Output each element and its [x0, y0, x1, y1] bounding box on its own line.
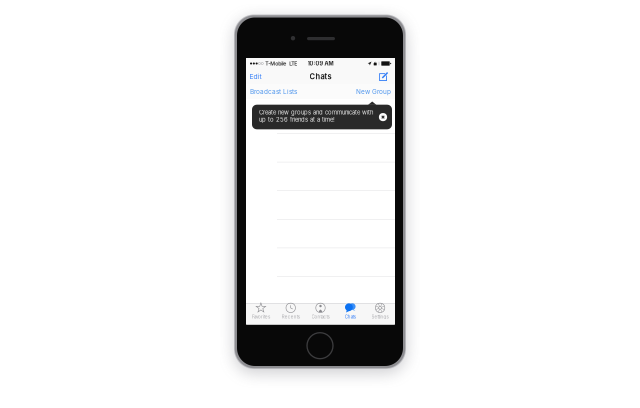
staticText: T-Mobile LTE [263, 60, 297, 67]
staticText: Recents [282, 314, 300, 319]
staticText: Settings [372, 314, 389, 319]
button[interactable]: Recents [276, 303, 306, 324]
staticText: Chats [309, 72, 331, 81]
staticText: New Group [356, 88, 391, 95]
staticText: Broadcast Lists [250, 88, 297, 95]
staticText: 10:09 AM [307, 60, 333, 67]
button[interactable]: Edit [248, 69, 264, 85]
button[interactable]: Broadcast Lists [248, 85, 299, 98]
button[interactable]: Compose [376, 68, 393, 85]
button[interactable]: New Group [354, 85, 393, 98]
staticText: Contacts [311, 314, 329, 319]
button[interactable]: Contacts [306, 303, 335, 324]
staticText: Create new groups and communicate with u… [259, 109, 373, 123]
staticText: Chats [345, 314, 356, 319]
button[interactable]: Chats [335, 303, 365, 324]
staticText: Favorites [252, 314, 270, 319]
button[interactable]: Dismiss tip [376, 111, 389, 124]
staticText: Edit [249, 73, 261, 81]
button[interactable]: Favorites [246, 303, 276, 324]
button[interactable]: Settings [365, 303, 395, 324]
